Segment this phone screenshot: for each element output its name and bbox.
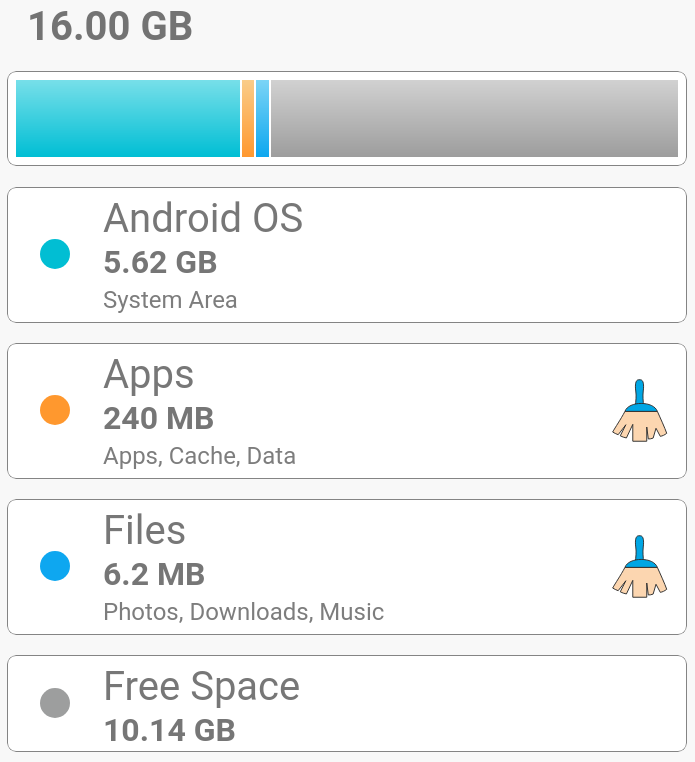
button[interactable]: Android OS (7, 187, 687, 323)
staticText: System Area (103, 286, 238, 314)
staticText: Android OS (103, 195, 304, 242)
staticText: 6.2 MB (103, 555, 206, 593)
staticText: 240 MB (103, 399, 215, 437)
staticText: 16.00 GB (27, 3, 194, 50)
button[interactable]: Apps (7, 343, 687, 479)
staticText: Files (103, 507, 187, 554)
button[interactable]: Clean (607, 372, 673, 438)
staticText: Photos, Downloads, Music (103, 598, 385, 626)
button[interactable]: Files (7, 499, 687, 635)
button[interactable]: Clean (607, 528, 673, 594)
button[interactable]: Free Space (7, 655, 687, 752)
staticText: 10.14 GB (103, 711, 236, 749)
staticText: Apps (103, 351, 195, 398)
staticText: Apps, Cache, Data (103, 442, 297, 470)
staticText: Free Space (103, 663, 301, 710)
staticText: 5.62 GB (103, 243, 218, 281)
